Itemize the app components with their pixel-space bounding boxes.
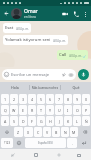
button[interactable]: More options: [81, 10, 89, 18]
staticText: Z: [17, 130, 20, 135]
staticText: Yolamak istiyorum seni: [5, 37, 51, 43]
button[interactable]: R: [28, 105, 36, 115]
button[interactable]: N: [61, 127, 69, 137]
button[interactable]: O: [73, 105, 81, 115]
button[interactable]: 9: [73, 94, 81, 104]
button[interactable]: 8: [64, 94, 72, 104]
button[interactable]: Shift: [1, 127, 13, 137]
button[interactable]: Video call: [59, 8, 70, 19]
staticText: 2: [13, 97, 16, 102]
staticText: Ñ: [85, 119, 88, 124]
button[interactable]: Split screen: [54, 150, 64, 160]
staticText: P: [85, 108, 88, 113]
button[interactable]: T: [37, 105, 45, 115]
button[interactable]: Esat: [3, 23, 31, 33]
staticText: H: [49, 119, 52, 124]
staticText: 4: [31, 97, 34, 102]
staticText: X: [27, 130, 30, 135]
button[interactable]: Attach: [61, 72, 67, 78]
button[interactable]: L: [73, 116, 81, 126]
button[interactable]: .: [67, 138, 77, 148]
button[interactable]: Español (ES): [25, 138, 66, 148]
button[interactable]: Send voice message: [78, 69, 89, 80]
staticText: T: [40, 108, 42, 113]
button[interactable]: F: [28, 116, 36, 126]
button[interactable]: 7: [55, 94, 63, 104]
button[interactable]: Emoji: [14, 138, 24, 148]
button[interactable]: X: [24, 127, 33, 137]
button[interactable]: Ñ: [82, 116, 90, 126]
button[interactable]: 6: [46, 94, 54, 104]
button[interactable]: D: [19, 116, 27, 126]
button[interactable]: S: [10, 116, 18, 126]
button[interactable]: 4: [28, 94, 36, 104]
button[interactable]: A: [1, 116, 9, 126]
button[interactable]: Backspace: [79, 127, 90, 137]
button[interactable]: G: [37, 116, 45, 126]
staticText: 4:04 p. m.: [69, 54, 82, 58]
staticText: G: [40, 119, 43, 124]
button[interactable]: M: [70, 127, 78, 137]
staticText: 1: [4, 97, 7, 102]
button[interactable]: 1: [1, 94, 9, 104]
staticText: L: [76, 119, 78, 124]
staticText: en línea: [24, 15, 36, 19]
button[interactable]: Enter: [78, 138, 90, 148]
staticText: Más buenas noches: [32, 86, 58, 90]
staticText: W: [12, 108, 16, 113]
button[interactable]: V: [43, 127, 51, 137]
staticText: S: [13, 119, 15, 124]
button[interactable]: Y: [46, 105, 54, 115]
button[interactable]: 5: [37, 94, 45, 104]
button[interactable]: 3: [19, 94, 27, 104]
staticText: 9: [76, 97, 79, 102]
staticText: R: [31, 108, 34, 113]
button[interactable]: 2: [10, 94, 18, 104]
staticText: 8: [67, 97, 70, 102]
button[interactable]: Omar: [24, 8, 59, 19]
button[interactable]: Back: [2, 9, 11, 18]
staticText: 6: [49, 97, 52, 102]
button[interactable]: Recents: [74, 150, 84, 160]
staticText: 3: [22, 97, 25, 102]
button[interactable]: E: [19, 105, 27, 115]
button[interactable]: Yolamak istiyorum seni: [3, 35, 68, 45]
button[interactable]: Call: [70, 8, 81, 19]
staticText: Esat: [5, 25, 14, 31]
staticText: Qué: [72, 85, 80, 90]
button[interactable]: Camera: [68, 72, 74, 78]
button[interactable]: ?123: [1, 138, 13, 148]
staticText: E: [22, 108, 24, 113]
staticText: B: [55, 130, 58, 135]
button[interactable]: 0: [82, 94, 90, 104]
button[interactable]: Escribe un mensaje: [2, 69, 76, 80]
staticText: U: [58, 108, 61, 113]
staticText: 7: [58, 97, 61, 102]
button[interactable]: Back: [8, 150, 18, 160]
button[interactable]: H: [46, 116, 54, 126]
button[interactable]: I: [64, 105, 72, 115]
button[interactable]: U: [55, 105, 63, 115]
button[interactable]: Más buenas noches: [30, 82, 60, 93]
button[interactable]: B: [52, 127, 60, 137]
button[interactable]: C: [34, 127, 42, 137]
staticText: .: [72, 141, 73, 146]
button[interactable]: K: [64, 116, 72, 126]
staticText: Y: [49, 108, 52, 113]
staticText: 4:04 p. m.: [53, 39, 66, 43]
button[interactable]: J: [55, 116, 63, 126]
button[interactable]: Z: [14, 127, 23, 137]
button[interactable]: Qué: [61, 82, 91, 93]
staticText: O: [76, 108, 79, 113]
staticText: A: [4, 119, 7, 124]
button[interactable]: Home: [31, 150, 41, 160]
staticText: 5: [40, 97, 43, 102]
button[interactable]: Q: [1, 105, 9, 115]
staticText: 4:04 p. m.: [16, 27, 29, 31]
staticText: J: [59, 119, 60, 124]
staticText: I: [67, 108, 69, 113]
button[interactable]: W: [10, 105, 18, 115]
button[interactable]: Hola: [0, 82, 29, 93]
button[interactable]: Call: [57, 50, 88, 60]
button[interactable]: P: [82, 105, 90, 115]
